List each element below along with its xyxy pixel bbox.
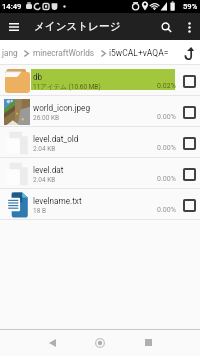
staticText: level.dat [33,165,64,175]
button[interactable]: Select level.dat [178,163,200,185]
button[interactable]: i5wCAL+vAQA= [109,48,169,58]
button[interactable]: Select levelname.txt [178,194,200,216]
button[interactable]: Open navigation drawer [0,13,27,40]
button[interactable]: Recent apps [133,329,163,356]
button[interactable]: Up one level [178,42,200,64]
button[interactable]: minecraftWorlds [33,48,95,58]
staticText: 0.00% [157,175,176,183]
button[interactable]: db [0,65,200,96]
button[interactable]: Home [85,329,115,356]
staticText: 14:49 [2,2,22,11]
button[interactable]: Select db [178,70,200,92]
staticText: db [33,72,43,82]
staticText: 59% [183,2,198,11]
staticText: levelname.txt [33,196,82,206]
staticText: 26.00 KB [33,114,60,122]
button[interactable]: Select level.dat_old [178,132,200,154]
staticText: 11アイテム (10.60 MB) [33,83,101,91]
staticText: 2.04 KB [33,145,56,153]
button[interactable]: Back [37,329,67,356]
staticText: 18 B [33,207,46,215]
staticText: 2.04 KB [33,176,56,184]
button[interactable]: level.dat_old [0,127,200,158]
staticText: 0.00% [157,206,176,214]
button[interactable]: level.dat [0,158,200,189]
staticText: world_icon.jpeg [33,103,91,113]
staticText: 0.00% [157,144,176,152]
button[interactable]: More options [178,16,200,38]
staticText: 0.02% [157,82,176,90]
staticText: 0.00% [157,113,176,121]
button[interactable]: jang [2,48,18,58]
button[interactable]: levelname.txt [0,189,200,220]
button[interactable]: Search [154,15,178,39]
button[interactable]: world_icon.jpeg [0,96,200,127]
staticText: メインストレージ [34,20,121,33]
button[interactable]: Select world_icon.jpeg [178,101,200,123]
staticText: level.dat_old [33,134,79,144]
